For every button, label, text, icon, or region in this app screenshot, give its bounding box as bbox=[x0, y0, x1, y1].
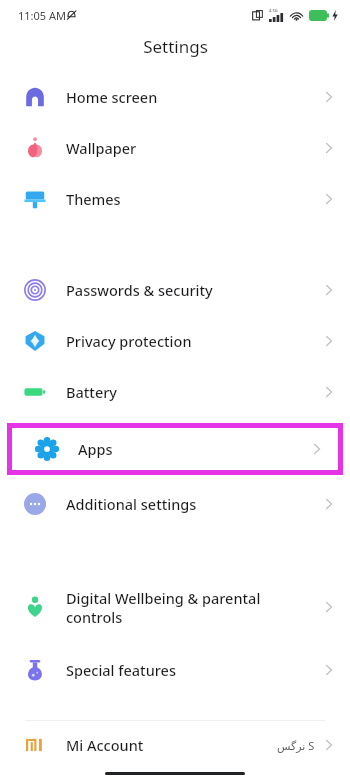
other: Themes bbox=[24, 188, 46, 210]
button[interactable]: Privacy protection bbox=[0, 322, 350, 359]
staticText: 11:05 AM bbox=[18, 8, 66, 23]
button[interactable]: Home screen bbox=[0, 78, 350, 115]
staticText: 4.5G bbox=[269, 8, 278, 13]
button[interactable]: Passwords and security bbox=[0, 271, 350, 308]
other: Digital Wellbeing and parental controls bbox=[24, 596, 46, 618]
button[interactable]: Apps bbox=[12, 428, 338, 470]
other: Apps bbox=[36, 438, 58, 460]
button[interactable]: Digital Wellbeing and parental controls bbox=[0, 577, 350, 637]
other: Privacy protection bbox=[24, 330, 46, 352]
staticText: نرگس S bbox=[277, 738, 315, 753]
staticText: Apps bbox=[78, 439, 310, 459]
button[interactable]: Mi Account bbox=[0, 721, 350, 769]
staticText: Settings bbox=[143, 35, 208, 58]
staticText: Home screen bbox=[66, 87, 322, 107]
staticText: Passwords & security bbox=[66, 280, 322, 300]
staticText: Battery bbox=[66, 382, 322, 402]
other: Special features bbox=[24, 659, 46, 681]
staticText: Themes bbox=[66, 189, 322, 209]
staticText: Special features bbox=[66, 660, 322, 680]
button[interactable]: Special features bbox=[0, 651, 350, 688]
staticText: Privacy protection bbox=[66, 331, 322, 351]
other: Wallpaper bbox=[24, 137, 46, 159]
button[interactable]: Wallpaper bbox=[0, 129, 350, 166]
staticText: Additional settings bbox=[66, 494, 322, 514]
other: Passwords and security bbox=[24, 279, 46, 301]
other: Additional settings bbox=[24, 493, 46, 515]
other: Battery bbox=[24, 381, 46, 403]
staticText: Wallpaper bbox=[66, 138, 322, 158]
staticText: Mi Account bbox=[66, 735, 277, 755]
button[interactable]: Themes bbox=[0, 180, 350, 217]
button[interactable]: Additional settings bbox=[0, 485, 350, 522]
button[interactable]: Battery bbox=[0, 373, 350, 410]
staticText: Digital Wellbeing & parental controls bbox=[66, 588, 322, 627]
other: Home screen bbox=[24, 86, 46, 108]
